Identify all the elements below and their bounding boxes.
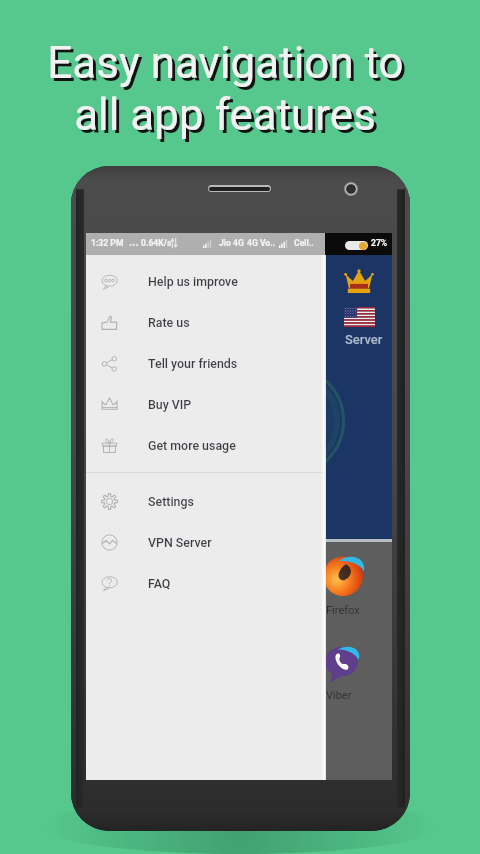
button[interactable]: Get more usage [86,425,325,466]
button[interactable]: FAQ [86,563,325,604]
staticText: all app features [77,92,379,144]
button[interactable]: Help us improve [86,261,325,302]
button[interactable]: Settings [86,481,325,522]
staticText: Settings [148,494,194,509]
button[interactable]: Rate us [86,302,325,343]
button[interactable]: Buy VIP [86,384,325,425]
staticText: FAQ [148,576,171,591]
staticText: Viber [326,689,352,702]
staticText: 0.64K/s [141,238,172,248]
button[interactable]: Tell your friends [86,343,325,384]
staticText: Rate us [148,315,190,330]
staticText: Tell your friends [148,356,238,371]
staticText: all app features [74,89,376,141]
staticText: VPN Server [148,535,212,550]
staticText: 1:32 PM [91,238,124,248]
staticText: 4G Vo.. [247,238,276,248]
button[interactable]: VPN Server [86,522,325,563]
staticText: Easy navigation to [50,40,407,92]
staticText: Cell.. [294,238,314,248]
staticText: Help us improve [148,274,238,289]
staticText: 27% [371,238,388,248]
staticText: Get more usage [148,438,236,453]
staticText: Easy navigation to [47,37,404,89]
staticText: Firefox [326,604,360,617]
staticText: Buy VIP [148,397,192,412]
staticText: Jio 4G [219,238,244,248]
staticText: Server [345,332,383,347]
